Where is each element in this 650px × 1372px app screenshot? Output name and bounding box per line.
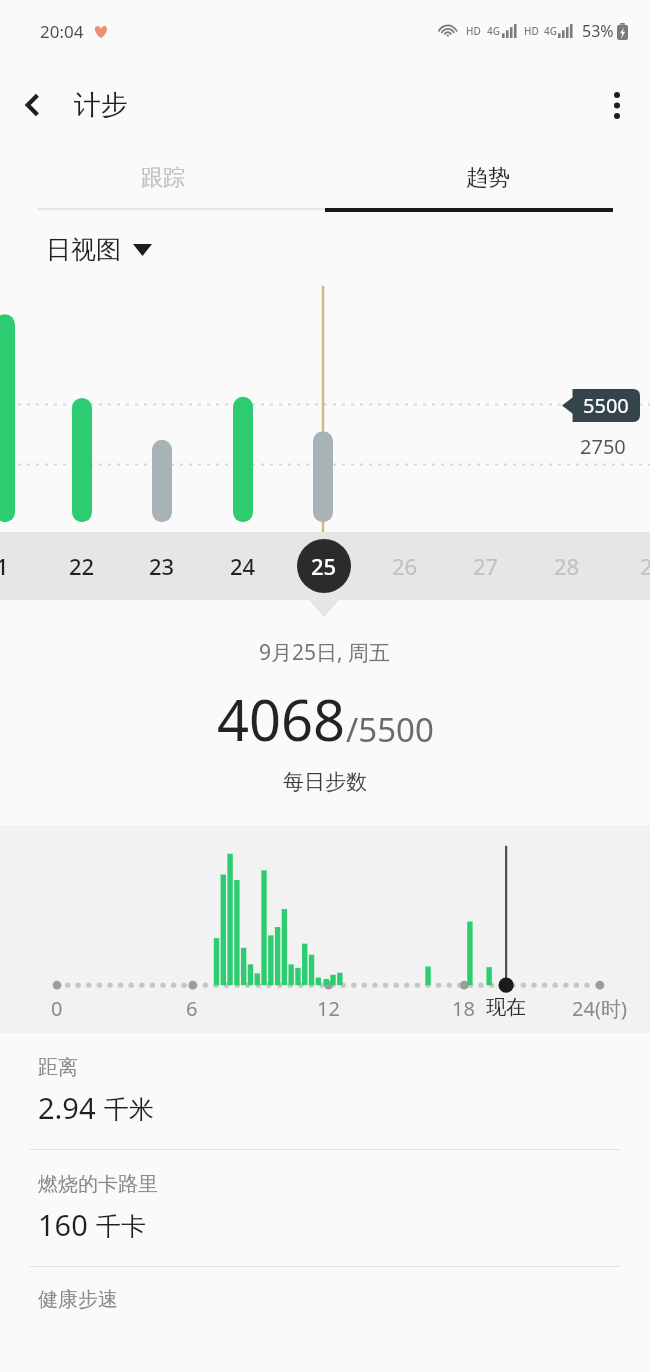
staticText: 趋势: [466, 164, 510, 192]
button[interactable]: 26: [378, 539, 432, 593]
staticText: 日视图: [46, 234, 121, 265]
button[interactable]: 25: [297, 539, 351, 593]
staticText: 千卡: [96, 1211, 146, 1242]
staticText: 距离: [38, 1055, 78, 1080]
staticText: 5500: [583, 392, 629, 419]
staticText: 2: [640, 551, 650, 581]
staticText: 2.94: [38, 1088, 96, 1127]
button[interactable]: 燃烧的卡路里: [0, 1150, 650, 1266]
staticText: 18: [452, 995, 475, 1022]
staticText: 燃烧的卡路里: [38, 1172, 158, 1197]
staticText: 4068: [217, 681, 346, 757]
staticText: 24(时): [572, 995, 627, 1022]
button[interactable]: 27: [459, 539, 513, 593]
button[interactable]: 24: [216, 539, 270, 593]
button[interactable]: 1: [0, 539, 29, 593]
staticText: 160: [38, 1205, 88, 1244]
button[interactable]: 日视图: [46, 234, 152, 265]
staticText: 22: [69, 551, 95, 581]
staticText: HD: [524, 24, 539, 38]
button[interactable]: 健康步速: [0, 1267, 650, 1312]
staticText: 计步: [74, 88, 128, 122]
staticText: 20:04: [40, 20, 84, 43]
staticText: 27: [473, 551, 499, 581]
staticText: /5500: [346, 707, 434, 752]
button[interactable]: 趋势: [325, 148, 650, 208]
staticText: HD: [466, 24, 481, 38]
button[interactable]: 跟踪: [0, 148, 325, 208]
button[interactable]: 2: [619, 539, 650, 593]
staticText: 1: [0, 551, 9, 581]
button[interactable]: 22: [55, 539, 109, 593]
staticText: 4G: [544, 24, 557, 38]
staticText: 26: [392, 551, 418, 581]
staticText: 24: [230, 551, 256, 581]
staticText: 6: [186, 995, 198, 1022]
staticText: 现在: [486, 995, 526, 1020]
staticText: 9月25日, 周五: [259, 638, 391, 667]
staticText: 25: [311, 551, 337, 581]
staticText: 4G: [487, 24, 500, 38]
button[interactable]: Back: [0, 72, 66, 138]
staticText: 28: [554, 551, 580, 581]
staticText: 千米: [104, 1094, 154, 1125]
staticText: 23: [149, 551, 175, 581]
staticText: 2750: [580, 433, 626, 460]
button[interactable]: 距离: [0, 1033, 650, 1149]
button[interactable]: 28: [540, 539, 594, 593]
staticText: 0: [51, 995, 63, 1022]
staticText: 跟踪: [141, 164, 185, 192]
button[interactable]: 23: [135, 539, 189, 593]
staticText: 12: [317, 995, 340, 1022]
staticText: 每日步数: [283, 769, 367, 795]
button[interactable]: More options: [584, 72, 650, 138]
staticText: 53%: [582, 20, 614, 42]
staticText: 健康步速: [38, 1287, 118, 1312]
